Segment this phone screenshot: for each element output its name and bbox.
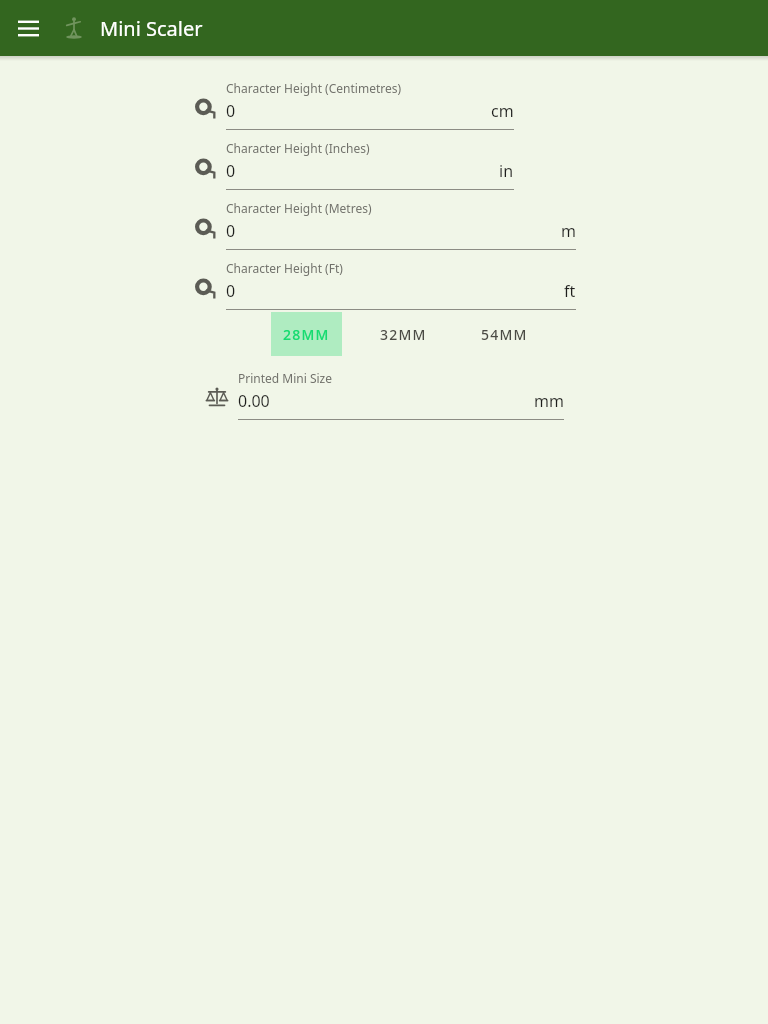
- button[interactable]: Printed Mini Size: [0, 360, 768, 420]
- button[interactable]: Character Height (Metres): [0, 190, 768, 250]
- staticText: 0.00: [238, 390, 270, 412]
- staticText: Character Height (Metres): [226, 200, 372, 216]
- button[interactable]: Open navigation drawer: [8, 8, 48, 48]
- button[interactable]: Character Height (Centimetres): [0, 70, 768, 130]
- staticText: 32MM: [380, 325, 427, 344]
- button[interactable]: 54MM: [469, 312, 540, 356]
- staticText: mm: [534, 390, 564, 412]
- staticText: 0: [226, 280, 236, 302]
- staticText: 28MM: [283, 325, 330, 344]
- staticText: Character Height (Centimetres): [226, 80, 402, 96]
- button[interactable]: 32MM: [368, 312, 439, 356]
- staticText: Mini Scaler: [100, 15, 203, 42]
- staticText: in: [499, 160, 514, 182]
- staticText: cm: [491, 100, 514, 122]
- staticText: ft: [564, 280, 576, 302]
- staticText: 0: [226, 220, 236, 242]
- staticText: 54MM: [481, 325, 528, 344]
- staticText: m: [561, 220, 576, 242]
- staticText: Character Height (Inches): [226, 140, 370, 156]
- button[interactable]: 28MM: [271, 312, 342, 356]
- staticText: Printed Mini Size: [238, 370, 333, 386]
- button[interactable]: Character Height (Inches): [0, 130, 768, 190]
- staticText: 0: [226, 100, 236, 122]
- staticText: 0: [226, 160, 236, 182]
- button[interactable]: Character Height (Ft): [0, 250, 768, 310]
- staticText: Character Height (Ft): [226, 260, 343, 276]
